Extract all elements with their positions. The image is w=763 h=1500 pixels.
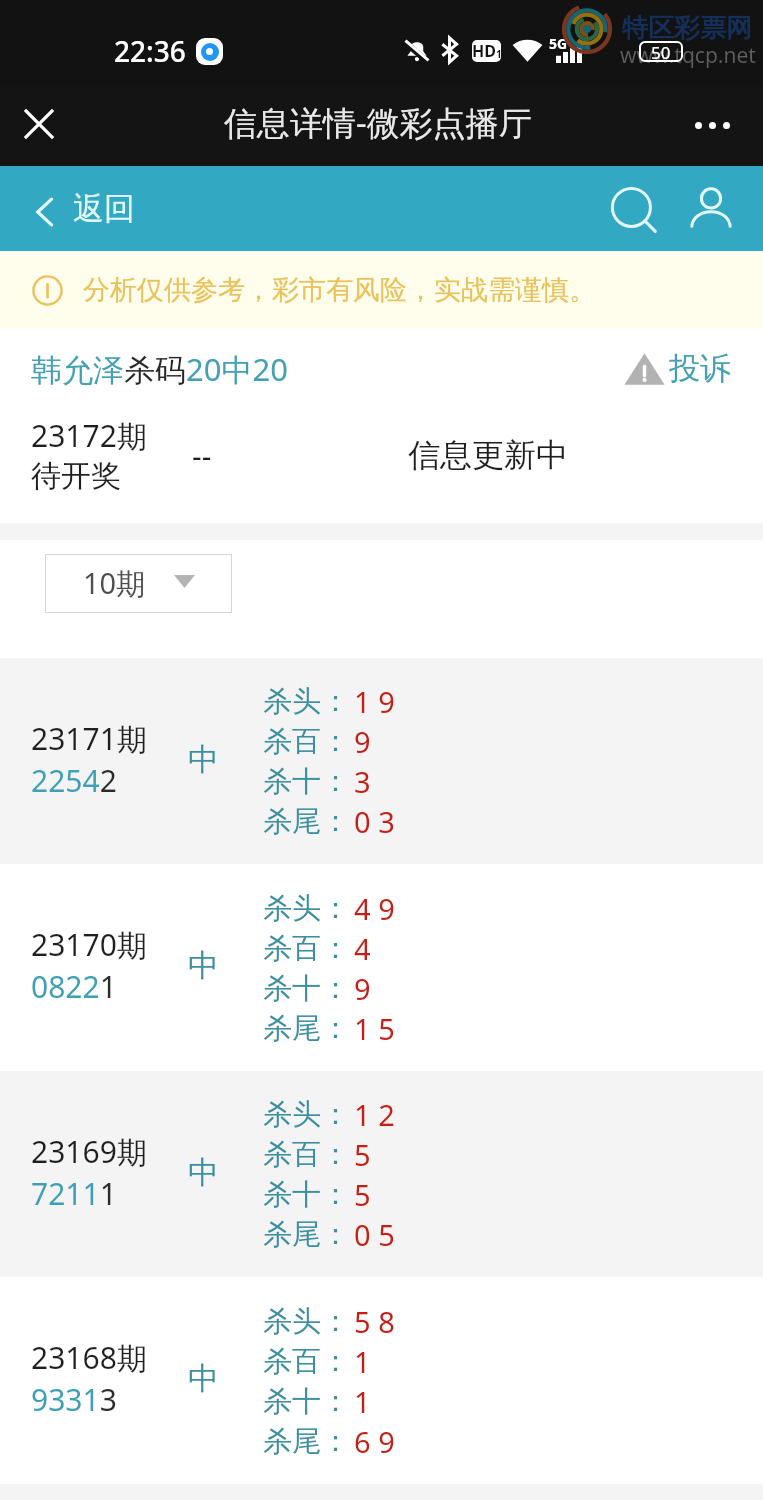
staticText: 5G [549,34,568,53]
staticText: 中 [188,946,219,985]
staticText: 信息详情-微彩点播厅 [224,100,532,145]
staticText: 杀头： [263,890,350,927]
staticText: 杀十： [263,763,350,800]
staticText: 中 [188,1359,219,1398]
staticText: 6 9 [354,1422,395,1461]
button[interactable]: Profile [679,177,743,241]
staticText: 韩允泽杀码20中20 [31,348,288,390]
staticText: 分析仅供参考，彩市有风险，实战需谨慎。 [83,273,596,307]
staticText: 08221 [31,966,117,1007]
staticText: 杀百： [263,1136,350,1173]
staticText: 23172期 [31,415,147,456]
staticText: 23170期 [31,924,147,965]
staticText: 22542 [31,760,117,801]
staticText: 4 [354,929,371,968]
button[interactable]: Close [13,99,65,151]
staticText: 72111 [31,1173,117,1214]
staticText: 23171期 [31,718,147,759]
staticText: 1 9 [354,682,395,721]
staticText: 返回 [73,189,135,228]
staticText: 杀十： [263,1176,350,1213]
staticText: 1 [354,1342,371,1381]
staticText: 杀百： [263,1343,350,1380]
staticText: 22:36 [114,32,186,70]
staticText: 5 [354,1135,371,1174]
staticText: 0 3 [354,802,395,841]
button[interactable]: 投诉 [620,345,735,392]
staticText: 23168期 [31,1337,147,1378]
staticText: 特区彩票网 [622,12,752,45]
button[interactable]: 返回 [25,181,143,236]
staticText: 杀头： [263,1096,350,1133]
staticText: 杀头： [263,1303,350,1340]
staticText: 杀尾： [263,803,350,840]
button[interactable]: 10期 [45,554,232,613]
staticText: 9 [354,722,371,761]
staticText: 杀十： [263,970,350,1007]
staticText: 杀尾： [263,1423,350,1460]
staticText: 投诉 [669,349,731,388]
staticText: www.tqcp.net [620,41,756,70]
staticText: 1 [496,47,501,61]
staticText: 杀头： [263,683,350,720]
staticText: 杀百： [263,930,350,967]
staticText: 杀十： [263,1383,350,1420]
staticText: 杀百： [263,723,350,760]
staticText: 5 [354,1175,371,1214]
staticText: 5 8 [354,1302,395,1341]
button[interactable]: 23169期 [0,1071,763,1277]
staticText: 3 [354,762,371,801]
staticText: 1 2 [354,1095,395,1134]
staticText: 10期 [83,563,146,603]
staticText: 1 [354,1382,371,1421]
staticText: -- [192,435,212,476]
staticText: 93313 [31,1379,117,1420]
staticText: 9 [354,969,371,1008]
button[interactable]: 23168期 [0,1277,763,1484]
staticText: 中 [188,740,219,779]
staticText: 50 [651,41,671,62]
button[interactable]: 23171期 [0,658,763,864]
staticText: 23169期 [31,1131,147,1172]
staticText: 0 5 [354,1215,395,1254]
staticText: 杀尾： [263,1216,350,1253]
staticText: 待开奖 [31,457,121,495]
staticText: 4 9 [354,889,395,928]
staticText: 杀尾： [263,1010,350,1047]
staticText: 1 5 [354,1009,395,1048]
staticText: HD [472,40,496,62]
button[interactable]: 23170期 [0,864,763,1071]
staticText: 中 [188,1153,219,1192]
button[interactable]: Search [601,177,665,241]
button[interactable]: More options [684,97,740,153]
staticText: 信息更新中 [408,435,568,475]
